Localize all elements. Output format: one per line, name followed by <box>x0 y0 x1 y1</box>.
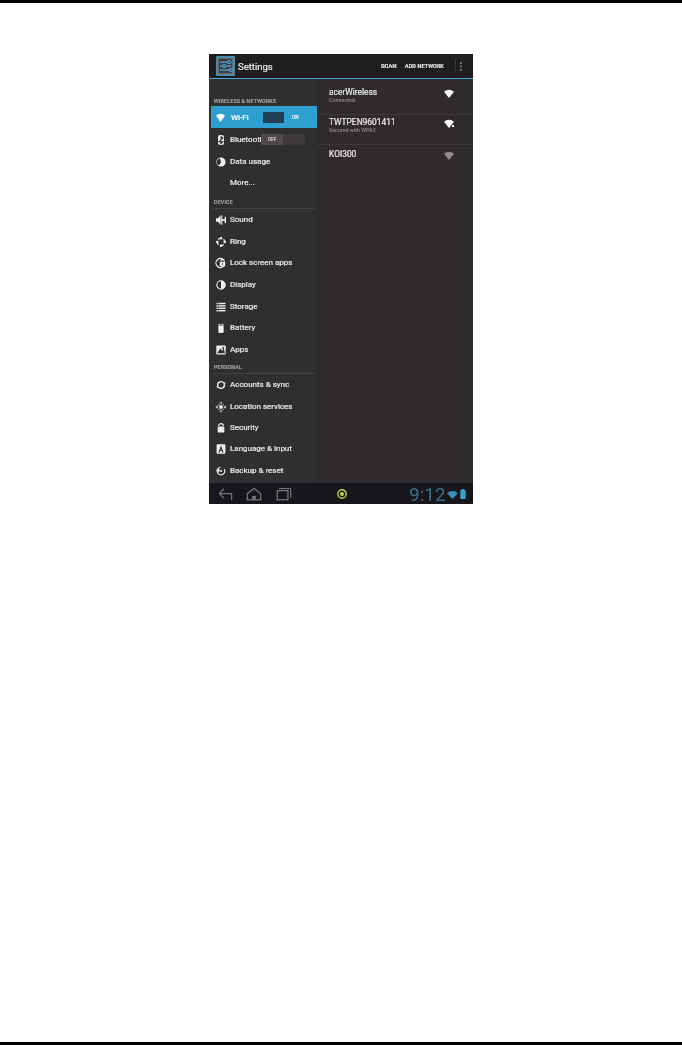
button[interactable]: Language & input <box>209 437 317 459</box>
staticText: Data usage <box>230 157 271 166</box>
button[interactable]: TWTPEN9601411 <box>317 115 473 144</box>
staticText: Sound <box>230 215 253 224</box>
button[interactable]: acerWireless <box>317 79 473 114</box>
button[interactable]: Apps <box>209 338 317 360</box>
staticText: Lock screen apps <box>230 258 293 267</box>
staticText: DEVICE <box>214 199 233 205</box>
staticText: More... <box>230 178 255 187</box>
button[interactable]: SCAN <box>377 54 401 78</box>
staticText: Language & input <box>230 444 292 453</box>
staticText: Battery <box>230 323 256 332</box>
staticText: Storage <box>230 302 258 311</box>
staticText: Security <box>230 423 259 432</box>
staticText: ON <box>292 115 299 120</box>
button[interactable]: Data usage <box>209 150 317 172</box>
staticText: Accounts & sync <box>230 380 290 389</box>
staticText: OFF <box>268 137 277 142</box>
staticText: Settings <box>238 61 273 72</box>
button[interactable]: Display <box>209 273 317 295</box>
staticText: KOI300 <box>329 149 357 159</box>
button[interactable]: Assistant <box>335 487 349 501</box>
staticText: Secured with WPA2 <box>329 127 376 133</box>
staticText: 9:12 <box>409 483 446 504</box>
staticText: Bluetooth <box>230 135 265 144</box>
staticText: PERSONAL <box>214 364 242 370</box>
button[interactable]: More options <box>454 54 467 78</box>
button[interactable]: More... <box>209 171 317 193</box>
staticText: Backup & reset <box>230 466 284 475</box>
staticText: ADD NETWORK <box>405 63 444 69</box>
button[interactable]: Recent apps <box>273 483 295 504</box>
button[interactable]: Wi-Fi <box>211 106 317 128</box>
button[interactable]: Accounts & sync <box>209 373 317 395</box>
button[interactable]: Back <box>215 483 237 504</box>
staticText: acerWireless <box>329 87 378 97</box>
button[interactable]: Lock screen apps <box>209 251 317 273</box>
staticText: SCAN <box>381 63 397 70</box>
staticText: Ring <box>230 237 246 246</box>
button[interactable]: Ring <box>209 230 317 252</box>
button[interactable]: Location services <box>209 395 317 417</box>
button[interactable]: Home <box>243 483 265 504</box>
button[interactable]: Settings <box>216 56 235 76</box>
button[interactable]: Battery <box>209 316 317 338</box>
staticText: Location services <box>230 402 293 411</box>
button[interactable]: KOI300 <box>317 145 473 174</box>
button[interactable]: Backup & reset <box>209 459 317 481</box>
staticText: Connected <box>329 97 355 103</box>
button[interactable]: Bluetooth <box>209 128 317 150</box>
button[interactable]: ADD NETWORK <box>401 54 448 78</box>
staticText: Wi-Fi <box>231 113 249 122</box>
staticText: Display <box>230 280 256 289</box>
button[interactable]: Sound <box>209 208 317 230</box>
button[interactable]: Storage <box>209 295 317 317</box>
staticText: Apps <box>230 345 249 354</box>
staticText: WIRELESS & NETWORKS <box>214 98 277 104</box>
button[interactable]: Security <box>209 416 317 438</box>
staticText: TWTPEN9601411 <box>329 117 396 127</box>
